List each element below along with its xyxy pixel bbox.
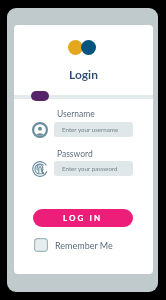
button[interactable]: Enter your password [54,161,133,176]
button[interactable]: Enter your username [54,122,133,137]
staticText: Login [69,67,98,81]
staticText: LOG IN [63,213,103,223]
staticText: Password [57,149,93,159]
button[interactable]: LOG IN [33,209,133,227]
staticText: Enter your username [62,126,119,133]
other: Fingerprint [32,161,48,177]
staticText: Enter your password [62,165,118,172]
staticText: Username [57,109,95,119]
staticText: Remember Me [55,240,113,251]
other: Username [32,122,48,138]
button[interactable]: Remember Me [34,238,113,252]
button[interactable]: Tab indicator [31,91,49,101]
